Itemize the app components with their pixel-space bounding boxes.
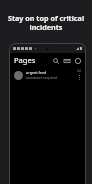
staticText: 2d [77,69,81,73]
button[interactable]: Account [72,55,83,66]
button[interactable]: urgent feed [10,67,85,83]
staticText: urgent feed [26,70,47,75]
button[interactable]: Inbox [61,55,72,66]
staticText: Pages [14,55,36,65]
staticText: Stay on top of critical incidents [6,13,86,32]
button[interactable]: More options [76,74,82,81]
staticText: assistance required [26,75,57,80]
button[interactable]: Search [50,55,61,66]
